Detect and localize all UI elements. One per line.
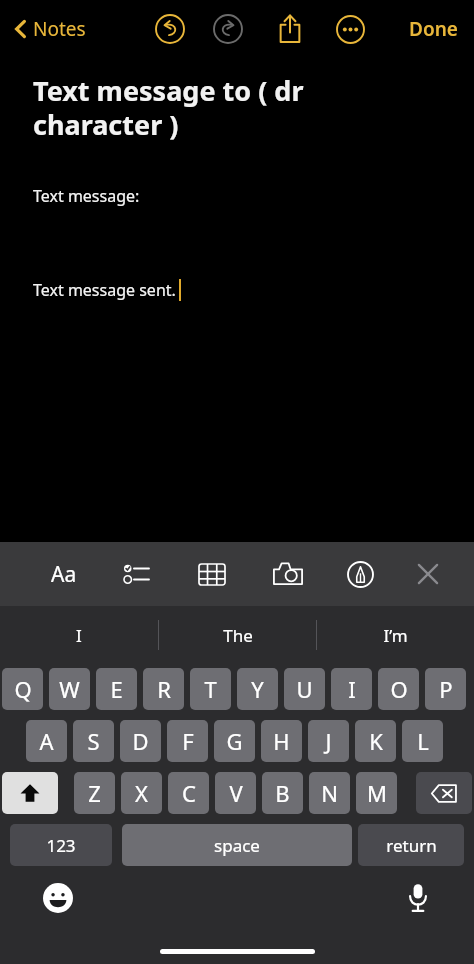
staticText: Done <box>409 16 458 42</box>
button[interactable]: W <box>49 668 90 710</box>
button[interactable]: Undo <box>150 9 190 49</box>
staticText: Text message: <box>33 185 140 207</box>
button[interactable]: return <box>358 824 464 866</box>
button[interactable]: D <box>120 720 161 762</box>
button[interactable]: R <box>143 668 184 710</box>
button[interactable]: Redo <box>208 9 248 49</box>
button[interactable]: Share <box>268 7 312 51</box>
button[interactable]: V <box>215 772 256 814</box>
button[interactable]: H <box>261 720 302 762</box>
staticText: J <box>325 726 332 756</box>
button[interactable]: Dictation <box>394 874 442 922</box>
staticText: Aa <box>51 560 77 589</box>
button[interactable]: N <box>309 772 350 814</box>
staticText: P <box>439 674 453 704</box>
staticText: Notes <box>33 16 86 42</box>
staticText: N <box>321 778 338 808</box>
button[interactable]: More options <box>328 7 372 51</box>
staticText: I <box>348 674 356 704</box>
staticText: R <box>157 674 171 704</box>
button[interactable]: Shift <box>2 772 58 814</box>
staticText: Q <box>14 674 32 704</box>
staticText: C <box>182 778 196 808</box>
button[interactable]: Markup <box>336 550 384 598</box>
staticText: E <box>110 674 123 704</box>
staticText: T <box>204 674 217 704</box>
button[interactable]: I <box>0 606 158 664</box>
staticText: S <box>87 726 100 756</box>
staticText: G <box>226 726 243 756</box>
button[interactable]: U <box>284 668 325 710</box>
staticText: H <box>273 726 290 756</box>
staticText: Text message to ( dr character ) <box>33 72 450 143</box>
button[interactable]: Camera <box>264 550 312 598</box>
button[interactable]: T <box>190 668 231 710</box>
button[interactable]: Done <box>403 10 464 48</box>
staticText: space <box>214 834 260 857</box>
staticText: U <box>296 674 313 704</box>
staticText: I <box>76 624 82 647</box>
button[interactable]: Close toolbar <box>404 550 452 598</box>
button[interactable]: O <box>378 668 419 710</box>
button[interactable]: Emoji keyboard <box>34 874 82 922</box>
staticText: X <box>135 778 148 808</box>
staticText: D <box>132 726 149 756</box>
staticText: V <box>229 778 243 808</box>
button[interactable]: K <box>355 720 396 762</box>
button[interactable]: Backspace <box>416 772 472 814</box>
staticText: Z <box>88 778 101 808</box>
button[interactable]: X <box>121 772 162 814</box>
button[interactable]: E <box>96 668 137 710</box>
button[interactable]: S <box>73 720 114 762</box>
button[interactable]: I’m <box>317 606 474 664</box>
button[interactable]: Checklist <box>112 550 160 598</box>
button[interactable]: J <box>308 720 349 762</box>
button[interactable]: The <box>159 606 316 664</box>
button[interactable]: F <box>167 720 208 762</box>
staticText: F <box>182 726 194 756</box>
staticText: I’m <box>383 624 408 647</box>
button[interactable]: P <box>425 668 466 710</box>
button[interactable]: M <box>356 772 397 814</box>
button[interactable]: space <box>122 824 352 866</box>
staticText: L <box>417 726 429 756</box>
staticText: Y <box>251 674 264 704</box>
button[interactable]: Q <box>2 668 43 710</box>
staticText: The <box>223 624 253 647</box>
staticText: return <box>386 834 437 857</box>
button[interactable]: Text format <box>40 550 88 598</box>
button[interactable]: I <box>331 668 372 710</box>
button[interactable]: G <box>214 720 255 762</box>
staticText: W <box>59 674 80 704</box>
button[interactable]: L <box>402 720 443 762</box>
staticText: K <box>369 726 383 756</box>
button[interactable]: Notes <box>8 10 92 48</box>
staticText: B <box>275 778 290 808</box>
button[interactable]: 123 <box>10 824 112 866</box>
staticText: A <box>39 726 54 756</box>
button[interactable]: A <box>26 720 67 762</box>
button[interactable]: C <box>168 772 209 814</box>
button[interactable]: Z <box>74 772 115 814</box>
button[interactable]: B <box>262 772 303 814</box>
button[interactable]: Table <box>188 550 236 598</box>
staticText: O <box>390 674 408 704</box>
button[interactable]: Y <box>237 668 278 710</box>
staticText: 123 <box>46 834 76 857</box>
staticText: Text message sent. <box>33 279 176 301</box>
staticText: M <box>367 778 387 808</box>
